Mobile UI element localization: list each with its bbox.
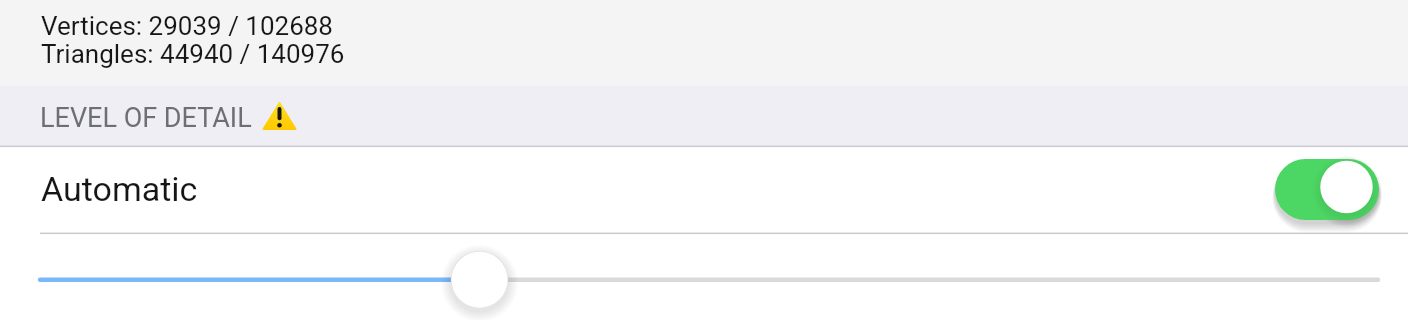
button[interactable]: Level of detail amount (0, 234, 1408, 320)
staticText: Vertices: 29039 / 102688 Triangles: 4494… (41, 11, 345, 70)
button[interactable]: Automatic level of detail, on (1269, 153, 1385, 226)
staticText: Automatic (41, 169, 198, 209)
button[interactable]: Automatic (0, 147, 1408, 233)
staticText: LEVEL OF DETAIL (40, 102, 252, 134)
